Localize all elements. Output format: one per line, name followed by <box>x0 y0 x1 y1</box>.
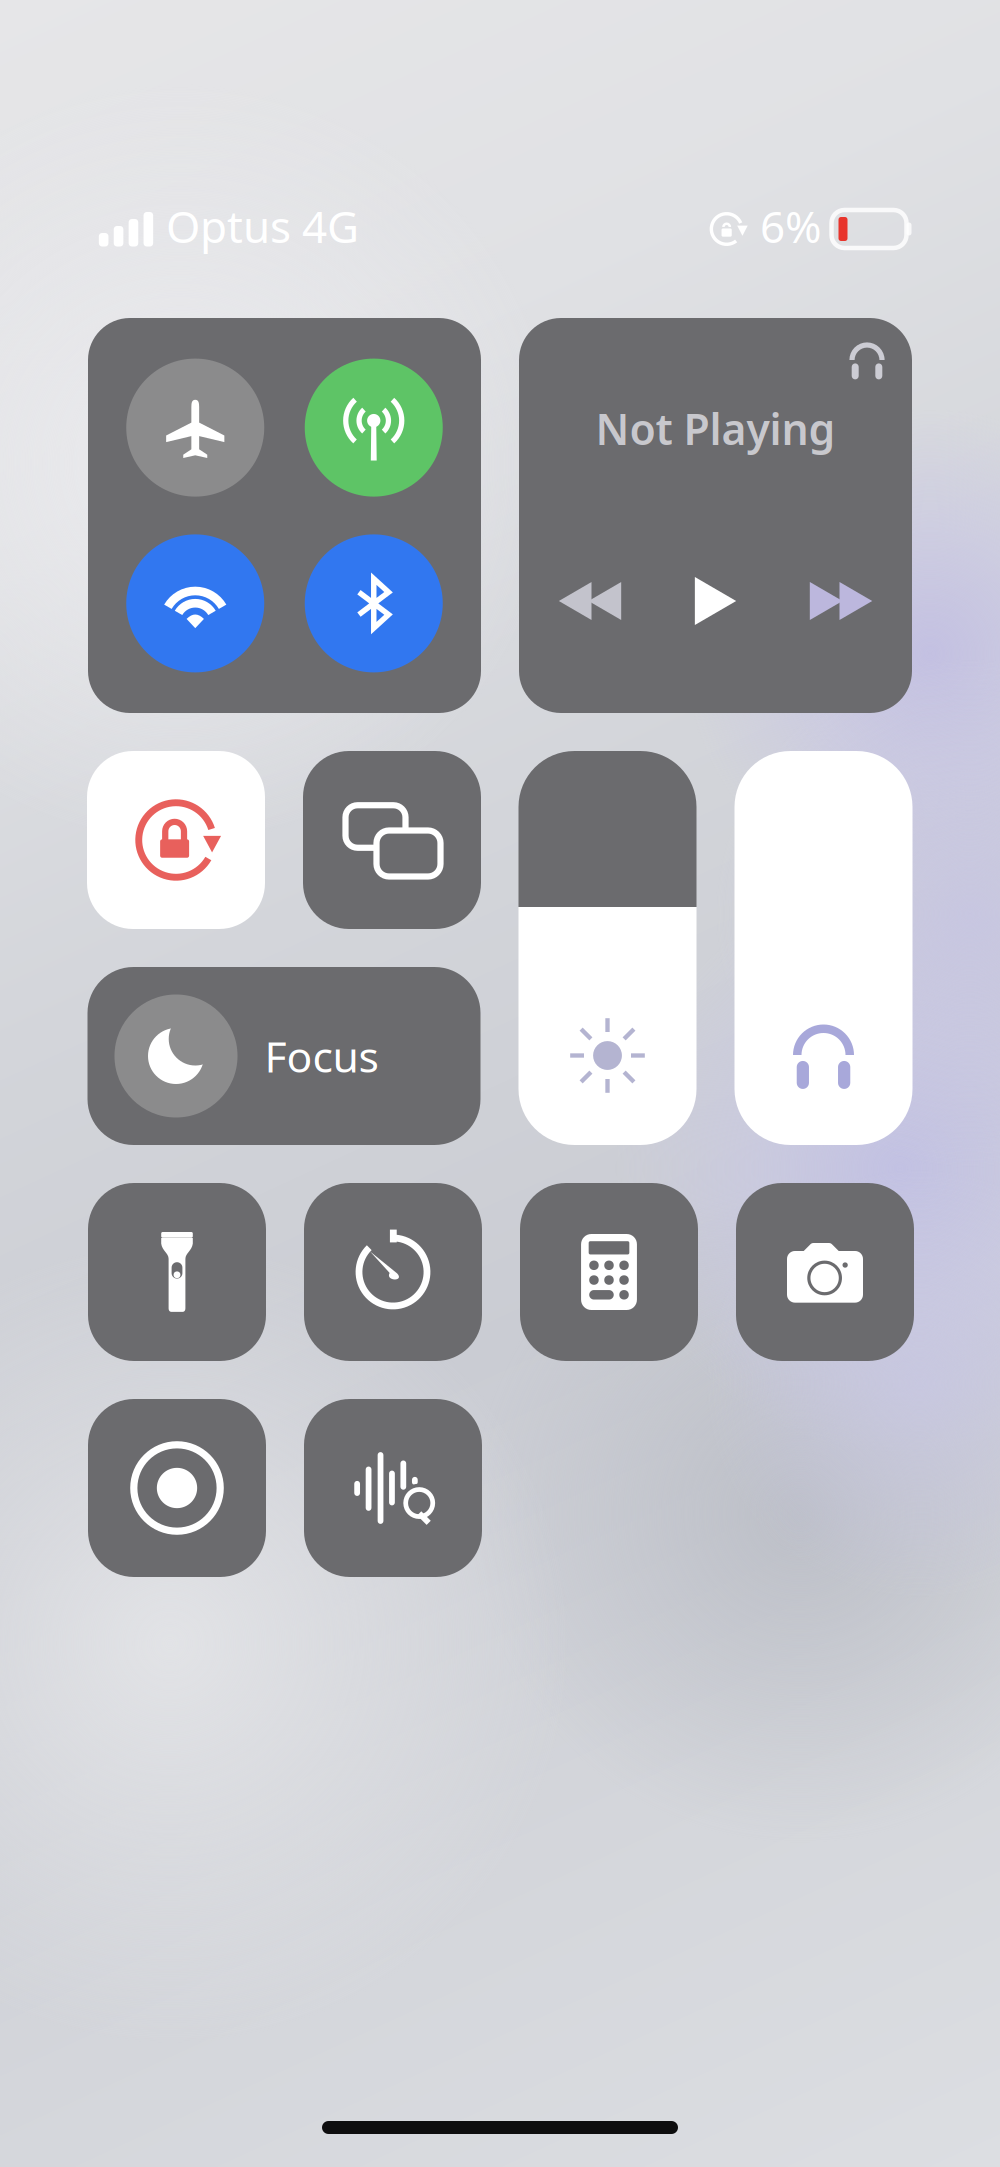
button[interactable]: Play <box>675 561 755 641</box>
button[interactable]: Screen Recording <box>88 1399 266 1577</box>
button[interactable]: Timer <box>304 1183 482 1361</box>
staticText: Focus <box>264 1028 378 1084</box>
button[interactable]: Focus <box>87 967 480 1145</box>
button[interactable]: Camera <box>736 1183 914 1361</box>
button[interactable]: Calculator <box>520 1183 698 1361</box>
button[interactable]: Airplane Mode <box>126 359 264 497</box>
button[interactable]: Previous Track <box>540 561 640 641</box>
button[interactable]: Screen Mirroring <box>303 751 481 929</box>
staticText: Not Playing <box>595 400 835 457</box>
button[interactable]: Flashlight <box>88 1183 266 1361</box>
button[interactable]: Volume <box>734 751 912 1145</box>
staticText: Optus 4G <box>166 197 359 255</box>
button[interactable]: Audio Output <box>842 336 892 384</box>
button[interactable]: Bluetooth <box>305 534 443 672</box>
staticText: 6% <box>760 197 822 255</box>
button[interactable]: Cellular Data <box>305 359 443 497</box>
button[interactable]: Rotation Lock <box>87 751 265 929</box>
button[interactable]: Sound Recognition <box>304 1399 482 1577</box>
button[interactable]: Wi-Fi <box>126 534 264 672</box>
button[interactable]: Next Track <box>791 561 891 641</box>
button[interactable]: Brightness <box>518 751 696 1145</box>
